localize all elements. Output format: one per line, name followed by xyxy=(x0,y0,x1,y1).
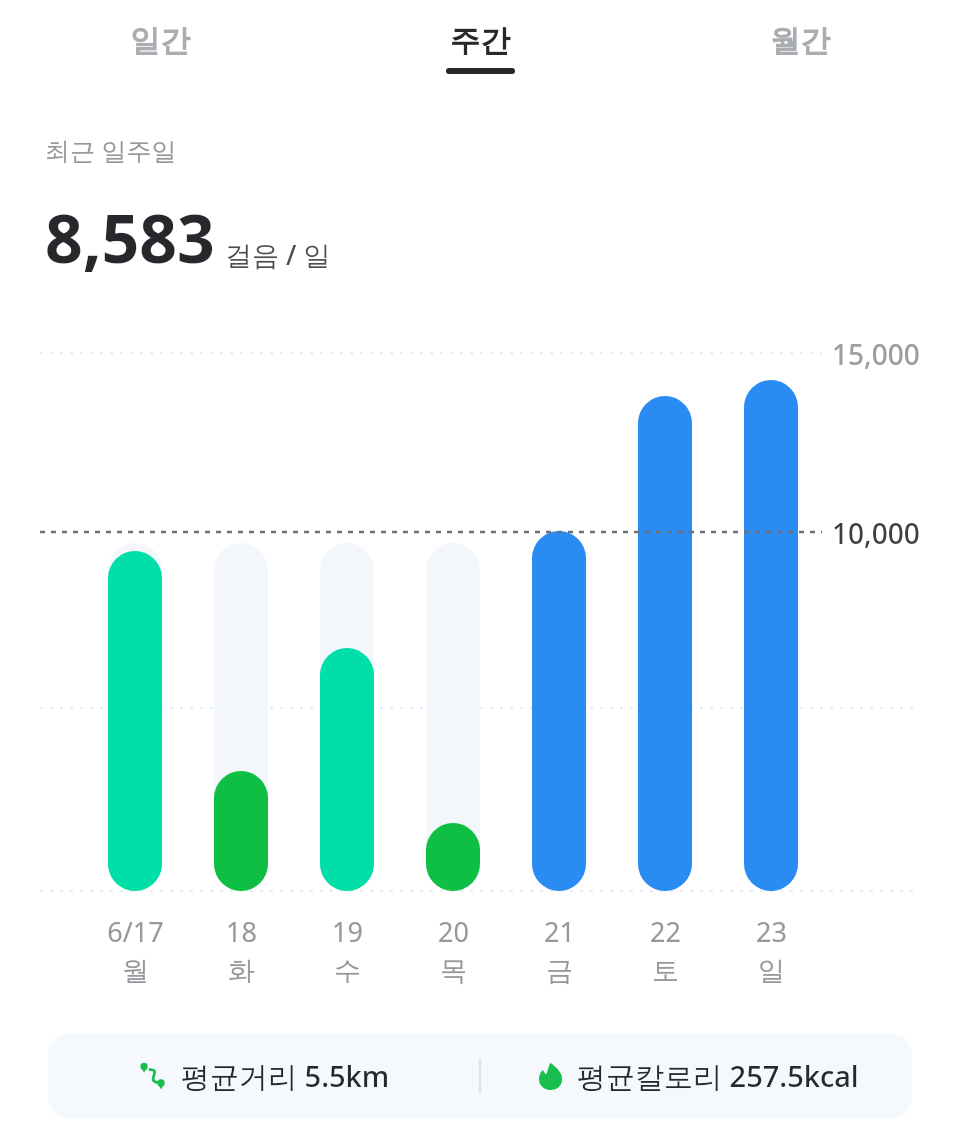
staticText: 월간 xyxy=(770,22,830,60)
staticText: 10,000 xyxy=(832,514,920,552)
staticText: 목 xyxy=(440,954,467,988)
staticText: 18 xyxy=(226,913,257,950)
staticText: 수 xyxy=(334,954,361,988)
button[interactable]: 주간 xyxy=(320,0,640,74)
staticText: 걸음 / 일 xyxy=(225,236,331,273)
staticText: 23 xyxy=(756,913,787,950)
staticText: 22 xyxy=(650,913,681,950)
staticText: 6/17 xyxy=(107,913,164,950)
staticText: 8,583 xyxy=(45,192,215,282)
staticText: 일 xyxy=(758,954,785,988)
staticText: 주간 xyxy=(450,22,510,60)
staticText: 화 xyxy=(228,954,255,988)
staticText: 20 xyxy=(438,913,469,950)
button[interactable]: 월간 xyxy=(640,0,960,60)
staticText: 월 xyxy=(122,954,149,988)
staticText: 일간 xyxy=(130,22,190,60)
staticText: 최근 일주일 xyxy=(45,133,177,167)
staticText: 21 xyxy=(544,913,575,950)
staticText: 금 xyxy=(546,954,573,988)
button[interactable]: 일간 xyxy=(0,0,320,60)
staticText: 토 xyxy=(652,954,679,988)
staticText: 평균칼로리 257.5kcal xyxy=(577,1056,859,1096)
button[interactable]: 거리 xyxy=(48,1034,912,1118)
staticText: 15,000 xyxy=(832,335,920,373)
staticText: 19 xyxy=(332,913,363,950)
other: 칼로리 xyxy=(535,1061,565,1091)
other: 거리 xyxy=(137,1060,169,1092)
staticText: 평균거리 5.5km xyxy=(181,1056,390,1096)
